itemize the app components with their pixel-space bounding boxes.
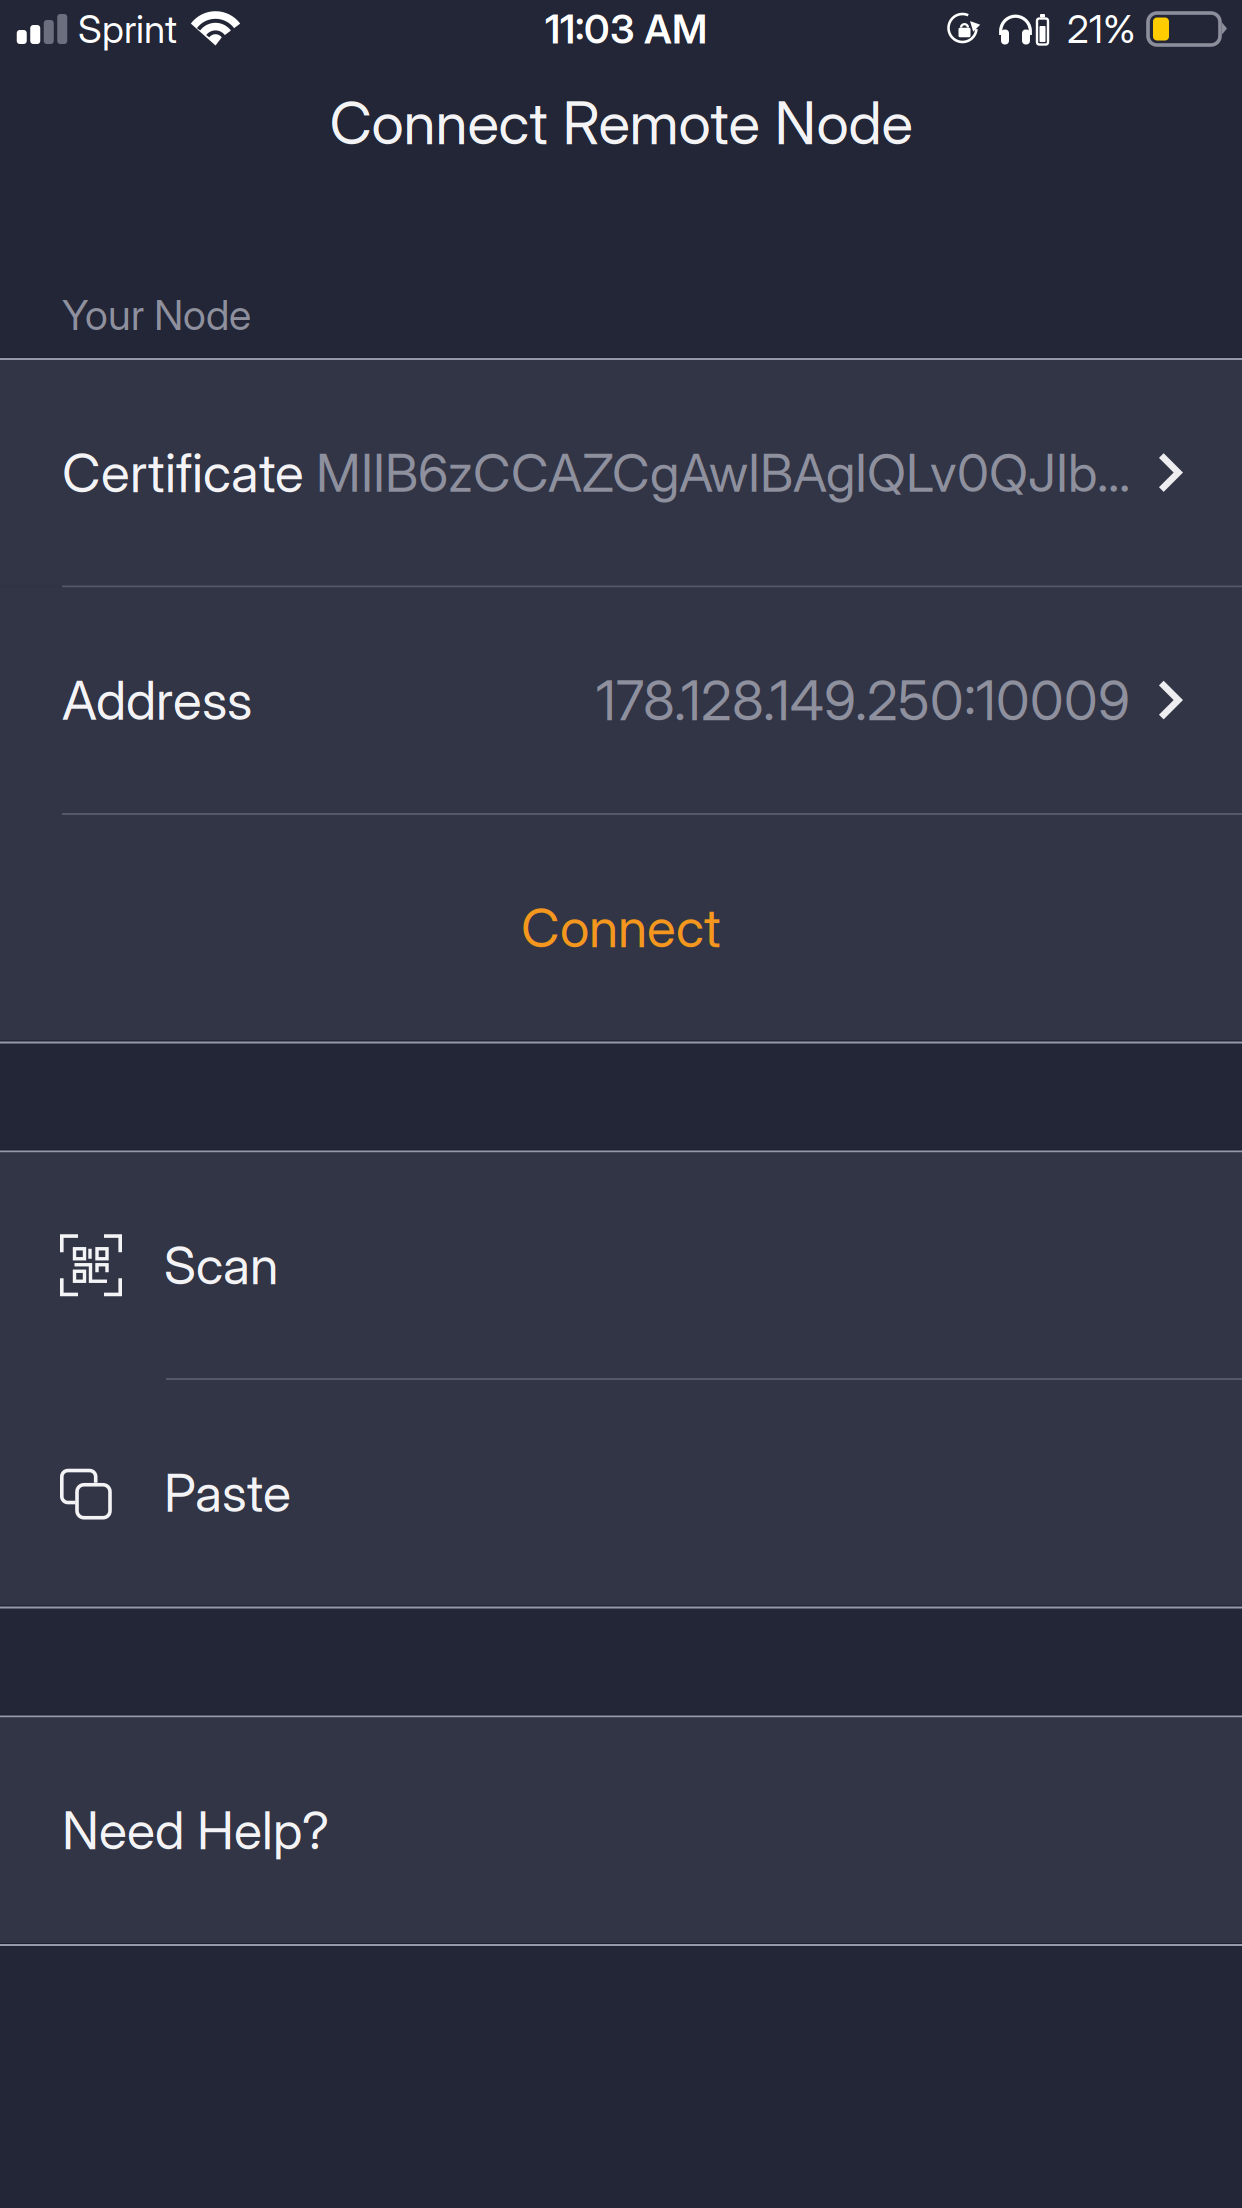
- staticText: Paste: [164, 1461, 291, 1524]
- staticText: Sprint: [78, 6, 177, 52]
- staticText: 11:03 AM: [545, 5, 707, 53]
- button[interactable]: Scan: [0, 1152, 1242, 1378]
- staticText: MIIB6zCCAZCgAwIBAgIQLv0QJIb...: [316, 441, 1130, 504]
- staticText: Connect: [521, 895, 721, 960]
- button[interactable]: Paste: [0, 1380, 1242, 1605]
- staticText: 21%: [1067, 6, 1136, 52]
- staticText: 178.128.149.250:10009: [596, 667, 1130, 733]
- button[interactable]: Connect: [0, 815, 1242, 1040]
- staticText: Your Node: [62, 290, 251, 340]
- button[interactable]: Certificate: [0, 360, 1242, 585]
- staticText: Connect Remote Node: [329, 87, 912, 158]
- button[interactable]: Address: [0, 587, 1242, 813]
- staticText: Address: [62, 668, 252, 732]
- staticText: Scan: [164, 1234, 278, 1297]
- staticText: Need Help?: [62, 1799, 329, 1862]
- staticText: Certificate: [62, 440, 304, 505]
- button[interactable]: Need Help?: [0, 1717, 1242, 1943]
